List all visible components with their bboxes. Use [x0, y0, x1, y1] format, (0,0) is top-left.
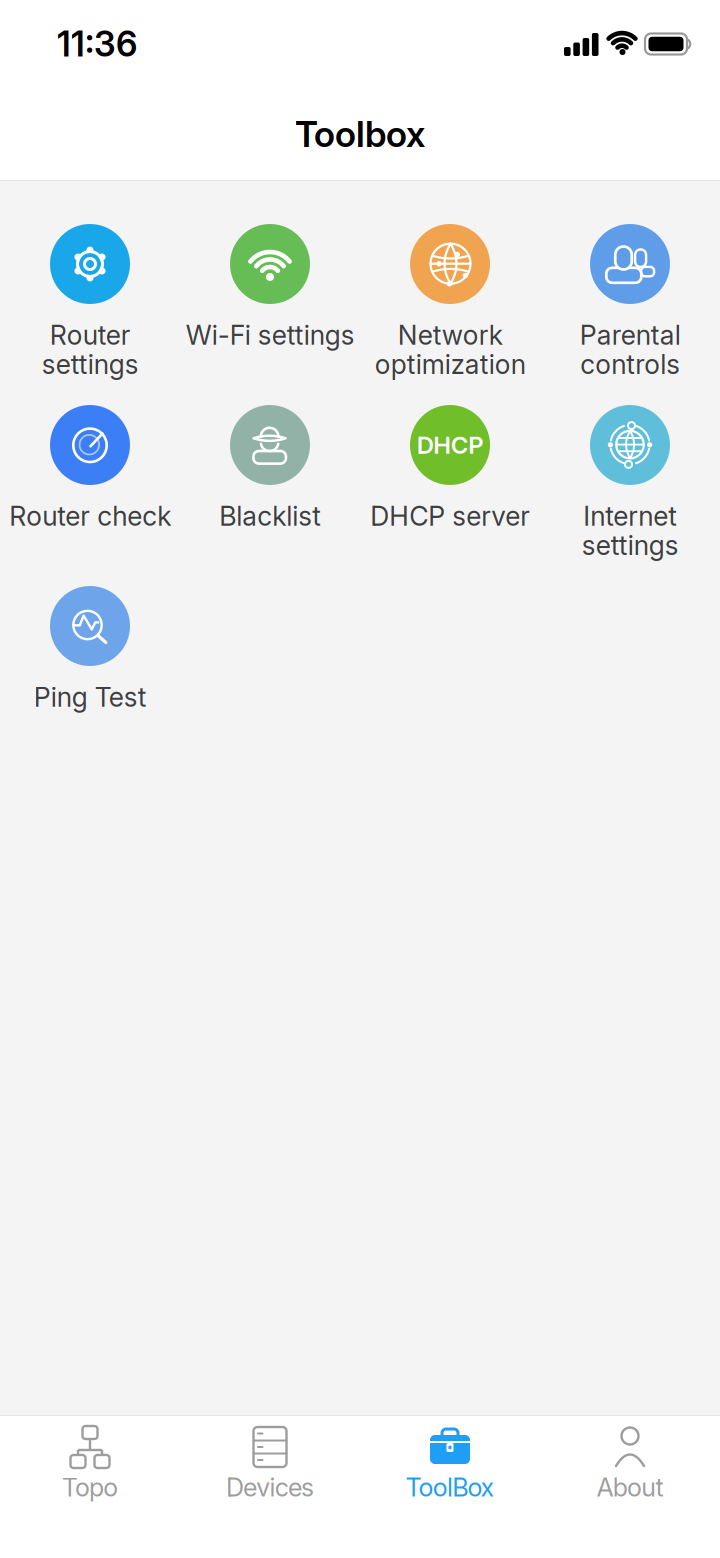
staticText: Router check: [9, 500, 171, 532]
button[interactable]: About: [540, 1426, 720, 1503]
staticText: DHCP server: [370, 500, 530, 532]
staticText: About: [597, 1472, 663, 1503]
button[interactable]: DHCP: [360, 405, 540, 586]
staticText: Toolbox: [295, 112, 425, 156]
staticText: DHCP: [417, 430, 483, 459]
staticText: Topo: [62, 1472, 118, 1503]
staticText: Internet settings: [581, 500, 678, 561]
button[interactable]: Topo: [0, 1426, 180, 1503]
button[interactable]: Blacklist: [180, 405, 360, 586]
button[interactable]: Parental controls: [540, 224, 720, 405]
button[interactable]: Router check: [0, 405, 180, 586]
button[interactable]: ToolBox: [360, 1426, 540, 1503]
staticText: Router settings: [41, 319, 138, 380]
button[interactable]: Internet settings: [540, 405, 720, 586]
button[interactable]: Ping Test: [0, 586, 180, 767]
staticText: Network optimization: [374, 319, 525, 380]
staticText: ToolBox: [405, 1472, 495, 1503]
staticText: Blacklist: [219, 500, 321, 532]
button[interactable]: Devices: [180, 1426, 360, 1503]
staticText: 11:36: [57, 23, 137, 65]
button[interactable]: Wi-Fi settings: [180, 224, 360, 405]
staticText: Devices: [226, 1472, 314, 1503]
staticText: Ping Test: [33, 681, 146, 713]
button[interactable]: Network optimization: [360, 224, 540, 405]
staticText: Parental controls: [579, 319, 680, 380]
button[interactable]: Router settings: [0, 224, 180, 405]
staticText: Wi-Fi settings: [185, 319, 354, 351]
